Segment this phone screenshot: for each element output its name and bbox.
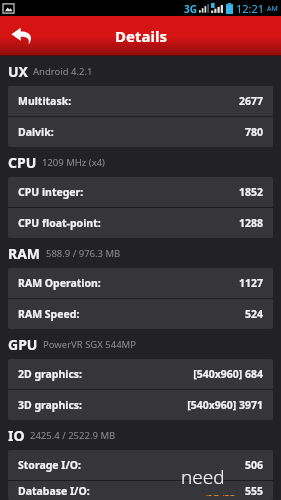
button[interactable]: Dalvik:	[8, 117, 273, 147]
button[interactable]: Multitask:	[8, 86, 273, 116]
staticText: IO	[8, 426, 25, 445]
staticText: 2425.4 / 2522.9 MB	[30, 429, 116, 442]
staticText: Android 4.2.1	[33, 65, 93, 78]
staticText: Details	[115, 26, 167, 46]
staticText: 1852	[238, 185, 263, 199]
button[interactable]: CPU float-point:	[8, 208, 273, 238]
staticText: 3D graphics:	[18, 398, 83, 412]
staticText: 1209 MHz (x4)	[42, 156, 105, 169]
button[interactable]: RAM Speed:	[8, 299, 273, 329]
staticText: 588.9 / 976.3 MB	[46, 247, 121, 260]
staticText: Dalvik:	[18, 125, 54, 139]
button[interactable]: Database I/O:	[8, 481, 273, 500]
staticText: 1127	[238, 276, 263, 290]
staticText: Multitask:	[18, 94, 72, 108]
button[interactable]: 3D graphics:	[8, 390, 273, 420]
button[interactable]: 2D graphics:	[8, 359, 273, 389]
staticText: 780	[244, 125, 263, 139]
button[interactable]: Storage I/O:	[8, 450, 273, 480]
staticText: AM	[267, 4, 278, 14]
staticText: PowerVR SGX 544MP	[43, 338, 136, 351]
staticText: rom	[205, 486, 237, 496]
staticText: 506	[244, 458, 263, 472]
staticText: RAM Speed:	[18, 307, 80, 321]
staticText: CPU	[8, 153, 37, 172]
staticText: [540x960] 3971	[187, 398, 263, 412]
staticText: 2D graphics:	[18, 367, 83, 381]
staticText: need	[181, 464, 225, 490]
button[interactable]: Back	[0, 16, 44, 56]
staticText: 524	[244, 307, 263, 321]
staticText: 3G	[184, 2, 197, 16]
staticText: 2677	[238, 94, 263, 108]
staticText: 12:21	[236, 1, 265, 16]
staticText: CPU float-point:	[18, 216, 101, 230]
staticText: RAM	[8, 244, 41, 263]
staticText: Storage I/O:	[18, 458, 82, 472]
staticText: Database I/O:	[18, 484, 90, 498]
staticText: [540x960] 684	[193, 367, 263, 381]
staticText: CPU integer:	[18, 185, 84, 199]
button[interactable]: RAM Operation:	[8, 268, 273, 298]
staticText: UX	[8, 62, 28, 81]
button[interactable]: CPU integer:	[8, 177, 273, 207]
staticText: 1288	[238, 216, 263, 230]
staticText: 555	[244, 484, 263, 498]
staticText: RAM Operation:	[18, 276, 101, 290]
staticText: GPU	[8, 335, 38, 354]
